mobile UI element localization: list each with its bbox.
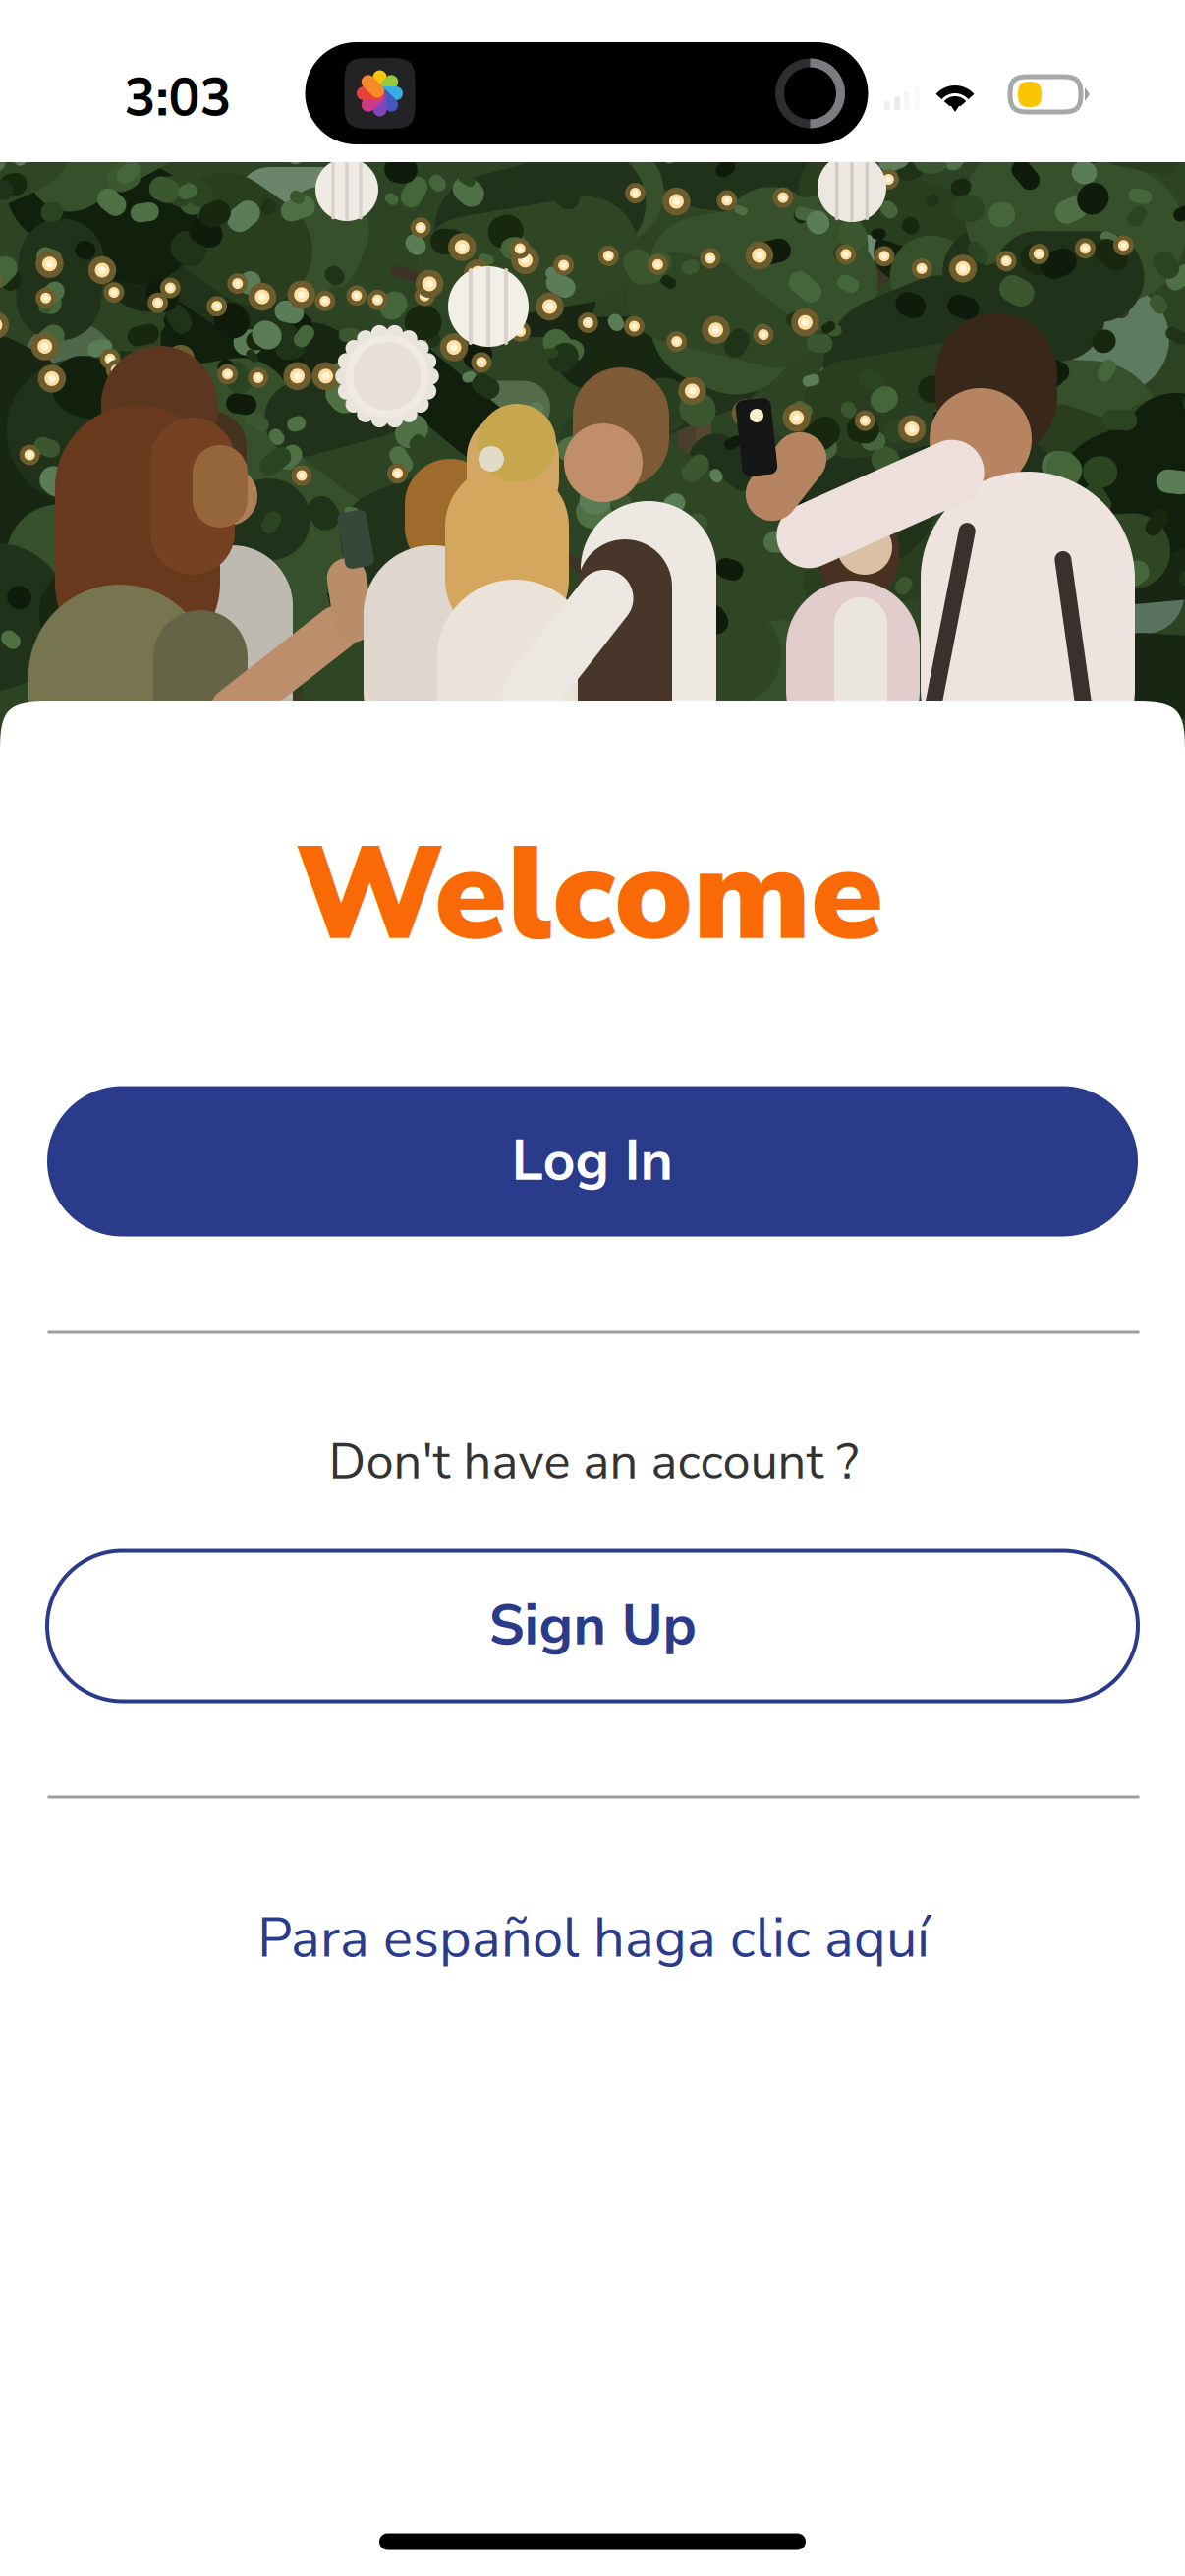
- staticText: Para español haga clic aquí: [257, 1901, 930, 1976]
- staticText: Don't have an account ?: [329, 1428, 858, 1496]
- staticText: Sign Up: [489, 1588, 696, 1664]
- staticText: Welcome: [296, 806, 883, 984]
- button[interactable]: Para español haga clic aquí: [257, 1901, 930, 1976]
- staticText: Log In: [511, 1123, 674, 1200]
- button[interactable]: Log In: [47, 1086, 1138, 1236]
- staticText: 3:03: [124, 62, 231, 134]
- button[interactable]: Sign Up: [47, 1551, 1138, 1701]
